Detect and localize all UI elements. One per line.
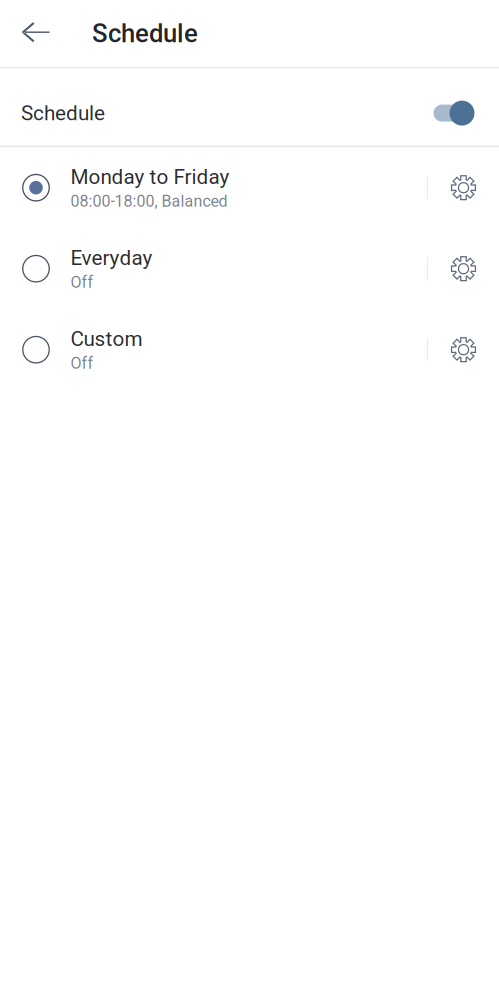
button[interactable]: Monday to Friday — [0, 147, 427, 228]
button[interactable]: Settings — [428, 228, 499, 309]
staticText: Off — [70, 273, 93, 292]
staticText: Monday to Friday — [70, 165, 229, 189]
button[interactable]: Settings — [428, 147, 499, 228]
staticText: Custom — [70, 327, 142, 351]
button[interactable]: Back — [8, 0, 64, 67]
staticText: Everyday — [70, 246, 152, 270]
staticText: Off — [70, 354, 93, 373]
button[interactable]: Schedule on — [433, 94, 474, 120]
staticText: 08:00-18:00, Balanced — [70, 192, 227, 211]
staticText: Schedule — [21, 101, 105, 125]
button[interactable]: Schedule — [0, 69, 499, 146]
button[interactable]: Everyday — [0, 228, 427, 309]
staticText: Schedule — [92, 18, 198, 49]
button[interactable]: Custom — [0, 309, 427, 390]
button[interactable]: Settings — [428, 309, 499, 390]
